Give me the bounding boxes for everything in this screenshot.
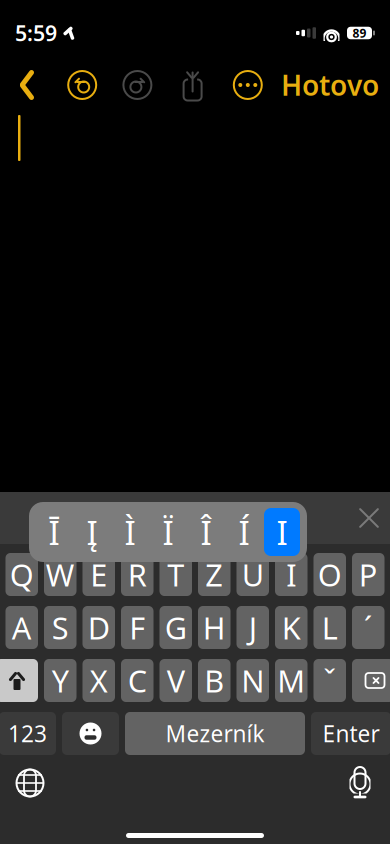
button[interactable]: H xyxy=(198,606,230,649)
staticText: A xyxy=(12,607,32,648)
button[interactable]: Shift xyxy=(0,659,38,702)
button[interactable]: Emoji xyxy=(62,712,119,755)
button[interactable]: M xyxy=(275,659,307,702)
staticText: H xyxy=(203,607,226,648)
button[interactable]: P xyxy=(352,553,384,596)
button[interactable]: N xyxy=(236,659,269,702)
button[interactable]: Î xyxy=(187,508,225,556)
button[interactable]: Close xyxy=(341,492,390,544)
staticText: X xyxy=(90,660,108,701)
staticText: T xyxy=(167,554,184,595)
button[interactable]: Undo xyxy=(60,63,104,107)
staticText: W xyxy=(46,554,75,595)
button[interactable]: K xyxy=(275,606,307,649)
staticText: I xyxy=(276,510,287,554)
button[interactable]: Mezerník xyxy=(125,712,305,755)
button[interactable]: More xyxy=(226,63,270,107)
staticText: 5:59 xyxy=(15,19,57,47)
button[interactable]: Delete xyxy=(352,659,390,702)
staticText: B xyxy=(204,660,224,701)
button[interactable]: J xyxy=(236,606,269,649)
button[interactable]: Dictation xyxy=(335,761,385,805)
staticText: P xyxy=(359,554,378,595)
staticText: D xyxy=(88,607,110,648)
staticText: U xyxy=(242,554,264,595)
button[interactable]: Hotovo xyxy=(281,63,379,107)
staticText: F xyxy=(129,607,145,648)
staticText: Mezerník xyxy=(165,718,264,748)
staticText: N xyxy=(241,660,264,701)
button[interactable]: G xyxy=(159,606,192,649)
staticText: Y xyxy=(52,660,69,701)
staticText: S xyxy=(52,607,69,648)
button[interactable]: Ì xyxy=(111,508,149,556)
button[interactable]: Ī xyxy=(35,508,73,556)
button[interactable]: 123 xyxy=(0,712,56,755)
staticText: Í xyxy=(238,510,249,554)
button[interactable]: T xyxy=(159,553,192,596)
staticText: ´ xyxy=(364,607,373,648)
staticText: Ï xyxy=(162,510,173,554)
button[interactable]: V xyxy=(159,659,192,702)
staticText: O xyxy=(318,554,342,595)
button[interactable]: F xyxy=(121,606,153,649)
button[interactable]: Y xyxy=(44,659,76,702)
button[interactable]: Í xyxy=(225,508,263,556)
staticText: Ī xyxy=(48,510,59,554)
staticText: M xyxy=(277,660,305,701)
button[interactable]: Next keyboard xyxy=(5,761,55,805)
button[interactable]: E xyxy=(82,553,115,596)
button[interactable]: I xyxy=(263,508,301,556)
staticText: Ì xyxy=(124,510,135,554)
button[interactable]: O xyxy=(313,553,346,596)
button[interactable]: S xyxy=(44,606,76,649)
button[interactable]: A xyxy=(5,606,38,649)
button[interactable]: Z xyxy=(198,553,230,596)
staticText: Q xyxy=(10,554,34,595)
button[interactable]: U xyxy=(236,553,269,596)
staticText: Î xyxy=(200,510,211,554)
staticText: V xyxy=(167,660,185,701)
staticText: 123 xyxy=(8,718,47,748)
staticText: L xyxy=(322,607,338,648)
staticText: G xyxy=(165,607,187,648)
button[interactable]: Enter xyxy=(311,712,390,755)
button[interactable]: ˇ xyxy=(313,659,346,702)
button[interactable]: Q xyxy=(5,553,38,596)
button[interactable]: W xyxy=(44,553,76,596)
staticText: E xyxy=(90,554,107,595)
staticText: 89 xyxy=(352,25,366,41)
staticText: ˇ xyxy=(323,660,336,701)
button[interactable]: D xyxy=(82,606,115,649)
button[interactable]: Redo xyxy=(115,63,159,107)
staticText: R xyxy=(128,554,147,595)
staticText: Į xyxy=(86,510,97,554)
staticText: C xyxy=(128,660,147,701)
button[interactable]: R xyxy=(121,553,153,596)
button[interactable]: Į xyxy=(73,508,111,556)
button[interactable]: L xyxy=(313,606,346,649)
button[interactable]: Back xyxy=(5,63,49,107)
staticText: J xyxy=(249,607,257,648)
button[interactable]: C xyxy=(121,659,153,702)
button[interactable]: X xyxy=(82,659,115,702)
staticText: Z xyxy=(205,554,223,595)
button[interactable]: Ï xyxy=(149,508,187,556)
button[interactable]: I xyxy=(275,553,307,596)
button[interactable]: ´ xyxy=(352,606,384,649)
button[interactable]: Share xyxy=(171,63,215,107)
staticText: I xyxy=(286,554,296,595)
staticText: Hotovo xyxy=(281,66,379,104)
staticText: Enter xyxy=(322,718,379,748)
staticText: K xyxy=(282,607,301,648)
button[interactable]: B xyxy=(198,659,230,702)
